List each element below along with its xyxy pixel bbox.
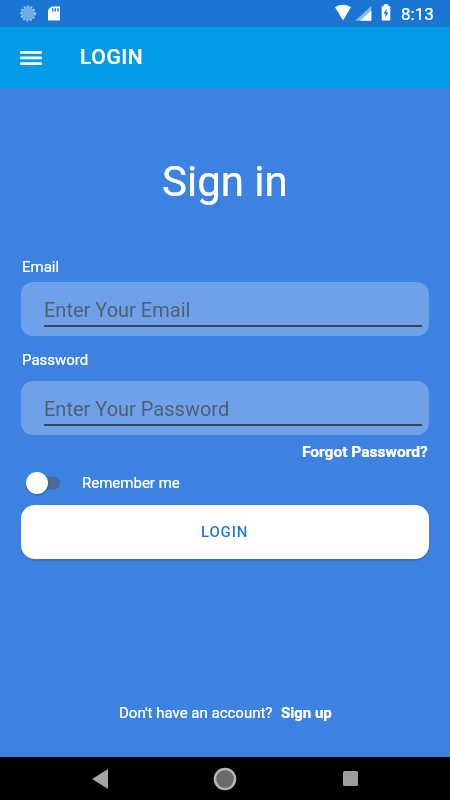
button[interactable]: Enter Your Password xyxy=(21,381,429,435)
button[interactable]: Sign up xyxy=(281,704,332,722)
staticText: Remember me xyxy=(82,474,180,492)
button[interactable]: Remember me xyxy=(19,469,180,497)
button[interactable] xyxy=(328,757,372,800)
button[interactable]: LOGIN xyxy=(21,505,429,559)
staticText: LOGIN xyxy=(80,45,144,70)
button[interactable]: Forgot Password? xyxy=(302,443,428,461)
staticText: Enter Your Email xyxy=(44,298,191,321)
staticText: Password xyxy=(22,351,89,369)
button[interactable] xyxy=(78,757,122,800)
button[interactable] xyxy=(203,757,247,800)
staticText: LOGIN xyxy=(201,523,249,541)
staticText: Sign in xyxy=(162,157,288,206)
staticText: Enter Your Password xyxy=(44,397,230,420)
button[interactable]: Enter Your Email xyxy=(21,282,429,336)
staticText: 8:13 xyxy=(401,4,434,24)
button[interactable] xyxy=(13,40,49,76)
staticText: Don't have an account? xyxy=(119,704,273,722)
staticText: Email xyxy=(22,258,60,276)
